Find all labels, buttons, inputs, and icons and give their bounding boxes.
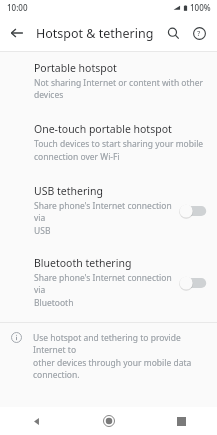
button[interactable]: Home bbox=[73, 407, 145, 435]
button[interactable]: Portable hotspot bbox=[0, 58, 217, 105]
button[interactable]: Toggle Bluetooth tethering bbox=[179, 273, 209, 293]
staticText: Share phone's Internet connection via bbox=[34, 272, 179, 296]
staticText: Touch devices to start sharing your mobi… bbox=[34, 138, 204, 150]
button[interactable]: Search bbox=[160, 20, 186, 46]
staticText: Bluetooth tethering bbox=[34, 256, 132, 270]
staticText: USB bbox=[34, 225, 51, 237]
button[interactable]: USB tethering bbox=[0, 181, 217, 241]
staticText: Bluetooth bbox=[34, 297, 74, 309]
staticText: USB tethering bbox=[34, 184, 103, 198]
button[interactable]: One-touch portable hotspot bbox=[0, 119, 217, 167]
staticText: 10:00 bbox=[7, 2, 28, 13]
staticText: One-touch portable hotspot bbox=[34, 122, 172, 136]
button[interactable]: Back bbox=[4, 20, 30, 46]
button[interactable]: Bluetooth tethering bbox=[0, 253, 217, 313]
staticText: Hotspot & tethering bbox=[36, 25, 160, 42]
staticText: Share phone's Internet connection via bbox=[34, 200, 179, 224]
staticText: connection over Wi-Fi bbox=[34, 151, 120, 163]
button[interactable]: Help bbox=[186, 20, 212, 46]
staticText: Not sharing Internet or content with oth… bbox=[34, 77, 209, 101]
staticText: 100% bbox=[190, 2, 211, 13]
staticText: Portable hotspot bbox=[34, 61, 117, 75]
button[interactable]: Recents bbox=[145, 407, 217, 435]
staticText: Use hotspot and tethering to provide Int… bbox=[33, 332, 207, 356]
staticText: other devices through your mobile data c… bbox=[33, 357, 207, 381]
button[interactable]: Back bbox=[0, 407, 73, 435]
button[interactable]: Toggle USB tethering bbox=[179, 201, 209, 221]
staticText: ? bbox=[197, 28, 201, 38]
